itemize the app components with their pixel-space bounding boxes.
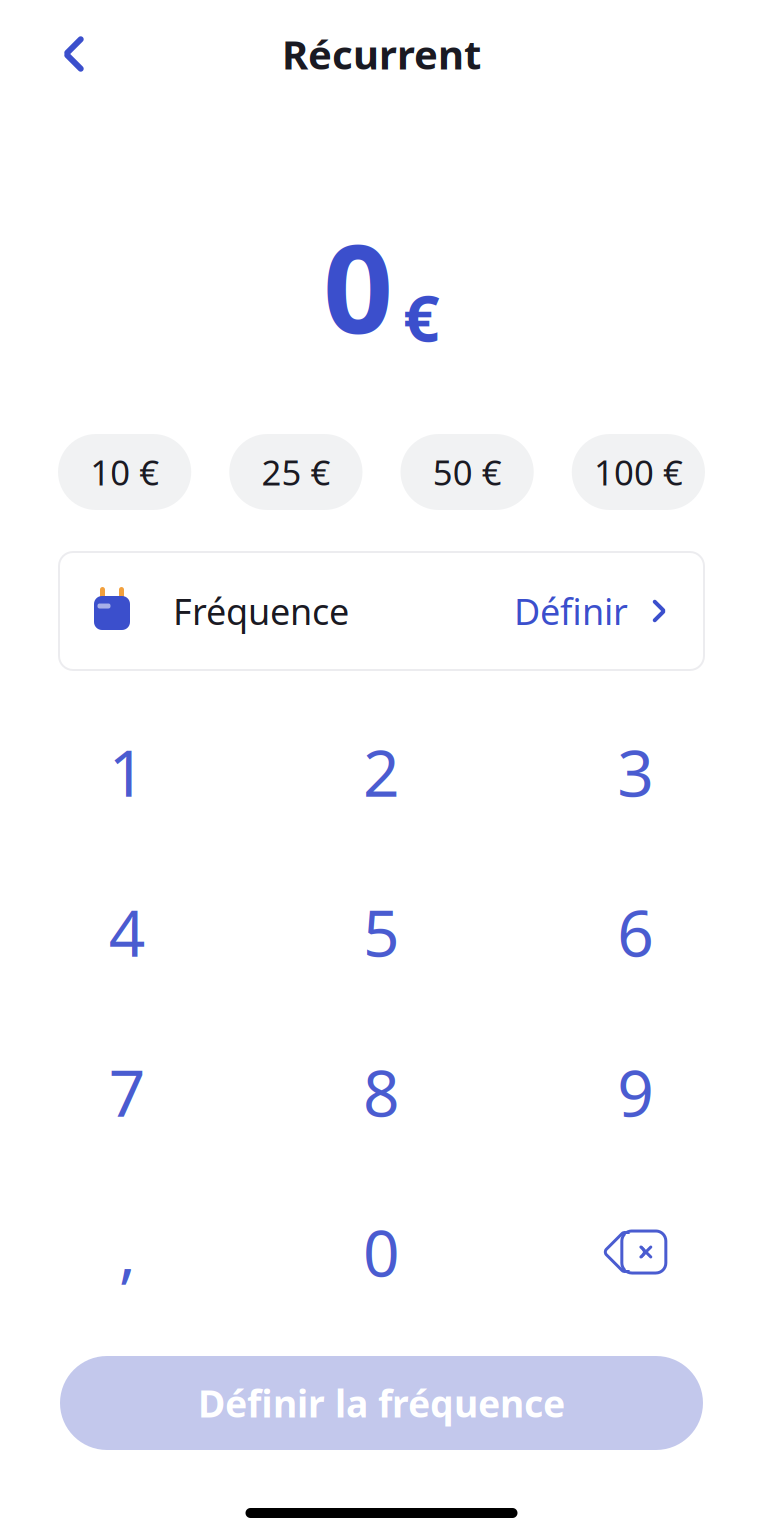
staticText: 10 € <box>90 449 159 495</box>
button[interactable]: 100 € <box>572 434 705 510</box>
staticText: Définir la fréquence <box>198 1378 565 1428</box>
staticText: 25 € <box>261 449 330 495</box>
button[interactable]: 25 € <box>229 434 362 510</box>
staticText: 5 <box>363 889 400 974</box>
staticText: Récurrent <box>282 27 481 80</box>
button[interactable]: 5 <box>254 852 509 1012</box>
button[interactable]: , <box>0 1172 254 1332</box>
button[interactable]: 10 € <box>58 434 191 510</box>
button[interactable]: 2 <box>254 692 509 852</box>
staticText: 8 <box>363 1049 400 1134</box>
staticText: 0 <box>323 205 393 367</box>
staticText: Fréquence <box>173 587 349 635</box>
staticText: 100 € <box>594 449 683 495</box>
button[interactable]: Définir la fréquence <box>60 1356 703 1450</box>
button[interactable]: Delete <box>509 1172 763 1332</box>
button[interactable]: 3 <box>509 692 763 852</box>
staticText: 50 € <box>433 449 502 495</box>
button[interactable]: 9 <box>509 1012 763 1172</box>
button[interactable]: 50 € <box>400 434 534 510</box>
staticText: 9 <box>617 1049 654 1134</box>
staticText: 2 <box>363 729 400 814</box>
staticText: 6 <box>617 889 654 974</box>
button[interactable]: 0 <box>254 1172 509 1332</box>
staticText: 7 <box>109 1049 146 1134</box>
button[interactable]: Fréquence <box>59 552 704 670</box>
staticText: 1 <box>109 729 146 814</box>
staticText: € <box>403 274 440 359</box>
button[interactable]: 1 <box>0 692 254 852</box>
staticText: 3 <box>617 729 654 814</box>
button[interactable]: 4 <box>0 852 254 1012</box>
button[interactable]: 7 <box>0 1012 254 1172</box>
button[interactable]: 6 <box>509 852 763 1012</box>
staticText: , <box>119 1209 136 1294</box>
staticText: Définir <box>514 587 628 635</box>
staticText: 0 <box>363 1209 400 1294</box>
staticText: 4 <box>109 889 146 974</box>
button[interactable]: 8 <box>254 1012 509 1172</box>
button[interactable]: Back <box>42 22 106 86</box>
